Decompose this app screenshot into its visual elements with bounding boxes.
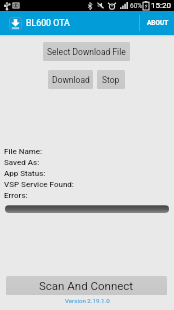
- staticText: File Name:: [4, 147, 43, 156]
- staticText: App Status:: [4, 169, 46, 178]
- staticText: Version 2.19.1.0: [65, 297, 110, 304]
- staticText: Scan And Connect: [39, 279, 134, 292]
- staticText: VSP Service Found:: [4, 180, 74, 189]
- staticText: 60%: [130, 2, 143, 10]
- staticText: Download: [52, 75, 90, 85]
- button[interactable]: Stop: [97, 70, 125, 89]
- staticText: Stop: [102, 75, 120, 85]
- button[interactable]: Scan And Connect: [6, 276, 167, 295]
- staticText: Saved As:: [4, 158, 40, 167]
- staticText: Errors:: [4, 191, 28, 200]
- staticText: Select Download File: [47, 47, 126, 57]
- button[interactable]: Select Download File: [43, 42, 130, 61]
- staticText: ABOUT: [147, 19, 169, 27]
- button[interactable]: ABOUT: [140, 11, 174, 35]
- button[interactable]: Download: [48, 70, 93, 89]
- staticText: BL600 OTA: [26, 18, 70, 28]
- staticText: 15:20: [151, 1, 171, 10]
